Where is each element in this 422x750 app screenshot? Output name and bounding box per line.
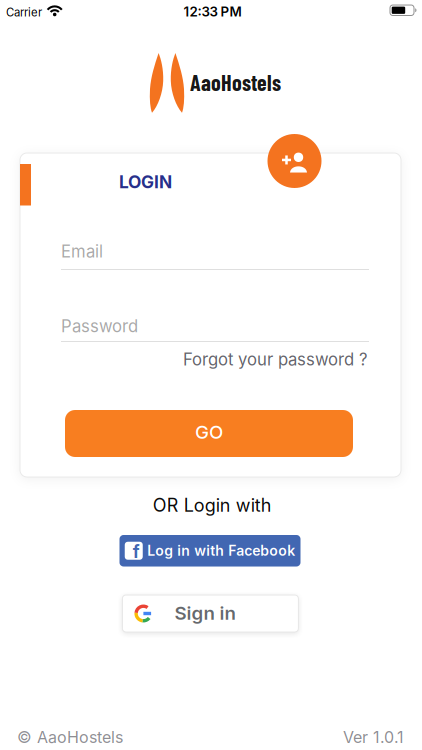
staticText: Log in with Facebook bbox=[147, 542, 295, 559]
button[interactable]: GO bbox=[65, 410, 353, 457]
staticText: f bbox=[133, 541, 140, 562]
staticText: OR Login with bbox=[153, 494, 272, 516]
staticText: Password bbox=[61, 316, 138, 336]
button[interactable]: Add account bbox=[267, 134, 321, 188]
button[interactable]: Email bbox=[61, 241, 369, 262]
staticText: LOGIN bbox=[119, 171, 172, 192]
staticText: Email bbox=[61, 241, 103, 262]
staticText: GO bbox=[195, 421, 223, 443]
button[interactable]: Forgot your password ? bbox=[183, 349, 368, 369]
staticText: Forgot your password ? bbox=[183, 349, 368, 369]
button[interactable]: f bbox=[119, 535, 300, 566]
button[interactable]: Sign in bbox=[122, 595, 298, 632]
staticText: Sign in bbox=[174, 602, 235, 624]
staticText: Carrier bbox=[6, 6, 42, 19]
button[interactable]: Password bbox=[61, 316, 369, 336]
staticText: 12:33 PM bbox=[184, 3, 242, 20]
staticText: Ver 1.0.1 bbox=[343, 727, 404, 747]
staticText: AaoHostels bbox=[190, 69, 281, 95]
staticText: © AaoHostels bbox=[17, 727, 123, 747]
